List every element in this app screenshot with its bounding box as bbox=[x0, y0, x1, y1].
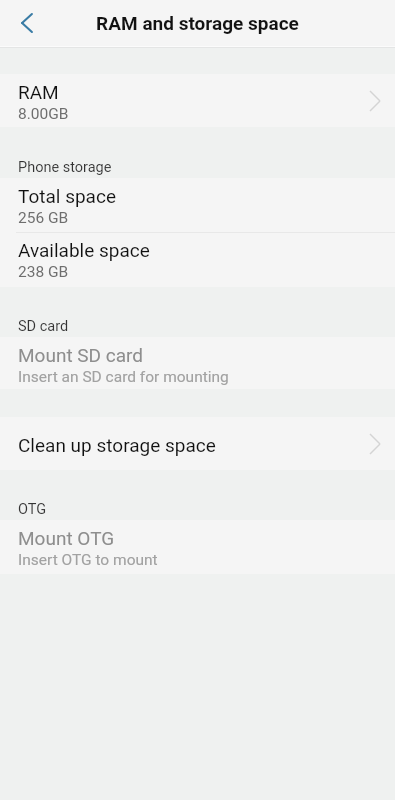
button[interactable]: Navigate up bbox=[0, 0, 54, 48]
staticText: Insert OTG to mount bbox=[18, 551, 158, 569]
staticText: 8.00GB bbox=[18, 105, 69, 123]
staticText: RAM bbox=[18, 81, 59, 103]
staticText: Mount OTG bbox=[18, 527, 115, 549]
staticText: RAM and storage space bbox=[96, 12, 299, 34]
staticText: Clean up storage space bbox=[18, 434, 216, 456]
staticText: Phone storage bbox=[18, 159, 112, 176]
staticText: 256 GB bbox=[18, 209, 69, 227]
staticText: Insert an SD card for mounting bbox=[18, 368, 229, 386]
button[interactable]: Mount OTG bbox=[0, 520, 395, 574]
staticText: 238 GB bbox=[18, 263, 69, 281]
button[interactable]: Total space bbox=[0, 178, 395, 232]
other: Open bbox=[369, 90, 381, 112]
staticText: SD card bbox=[18, 318, 69, 335]
staticText: Available space bbox=[18, 239, 150, 261]
button[interactable]: Available space bbox=[0, 232, 395, 287]
button[interactable]: Clean up storage space bbox=[0, 417, 395, 470]
staticText: Mount SD card bbox=[18, 344, 144, 366]
button[interactable]: Mount SD card bbox=[0, 337, 395, 389]
staticText: OTG bbox=[18, 501, 47, 518]
staticText: Total space bbox=[18, 185, 116, 207]
other: Open bbox=[369, 433, 381, 455]
button[interactable]: RAM bbox=[0, 74, 395, 127]
